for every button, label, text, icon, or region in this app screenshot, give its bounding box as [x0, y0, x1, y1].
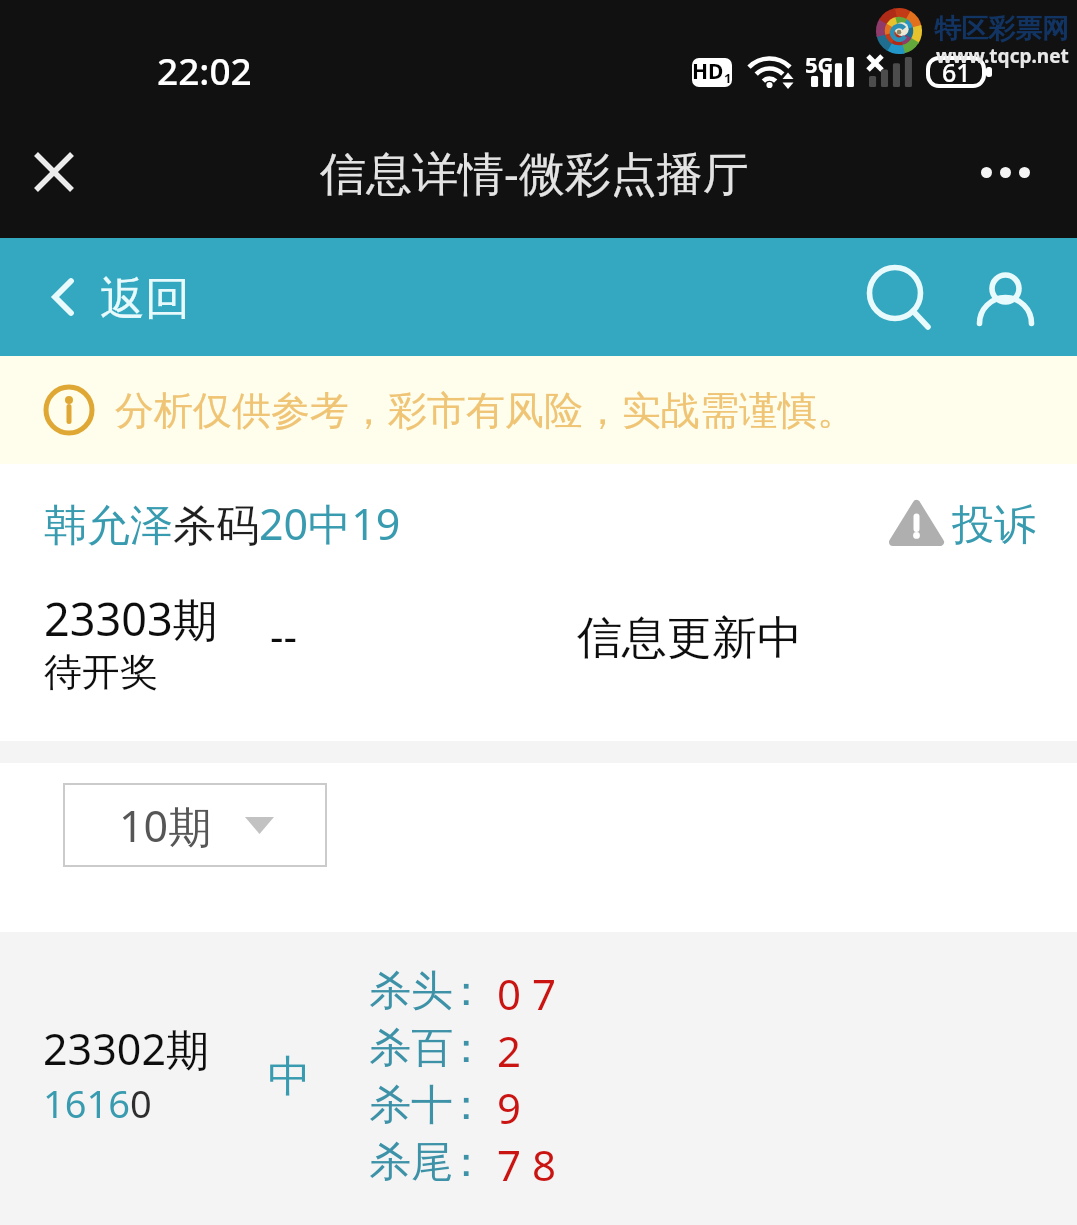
staticText: 分析仅供参考，彩市有风险，实战需谨慎。 — [115, 386, 856, 435]
staticText: ： — [445, 1022, 487, 1075]
staticText: 1 — [724, 69, 732, 87]
staticText: 22:02 — [157, 45, 252, 95]
staticText: 杀尾 — [369, 1136, 453, 1189]
staticText: 23302期 — [43, 1019, 209, 1078]
staticText: HD — [692, 58, 724, 86]
staticText: 61 — [942, 55, 971, 87]
button[interactable]: More options — [962, 129, 1048, 215]
button[interactable]: Profile — [962, 252, 1050, 340]
staticText: 5G — [805, 49, 834, 79]
button[interactable]: 返回 — [30, 246, 206, 347]
staticText: www.tqcp.net — [936, 43, 1069, 69]
staticText: 信息更新中 — [577, 610, 802, 667]
staticText: 待开奖 — [44, 648, 158, 696]
staticText: ： — [445, 1079, 487, 1132]
button[interactable]: 10期 — [63, 783, 327, 867]
button[interactable]: 韩允泽杀码20中19 — [0, 464, 1077, 741]
staticText: 杀百 — [369, 1022, 453, 1075]
staticText: 中 — [268, 1050, 311, 1104]
button[interactable]: 投诉 — [875, 486, 1050, 559]
button[interactable]: Search — [851, 252, 939, 340]
staticText: 韩允泽杀码20中19 — [44, 494, 401, 553]
staticText: ： — [445, 1136, 487, 1189]
staticText: 杀头 — [369, 965, 453, 1018]
staticText: 23303期 — [44, 588, 218, 649]
staticText: 投诉 — [952, 499, 1036, 552]
staticText: 杀十 — [369, 1079, 453, 1132]
button[interactable]: 23302期 — [0, 932, 1077, 1225]
staticText: 0 7 — [497, 965, 556, 1022]
staticText: -- — [270, 607, 298, 664]
staticText: 返回 — [100, 271, 190, 328]
staticText: 信息详情-微彩点播厅 — [320, 141, 749, 204]
staticText: 特区彩票网 — [934, 12, 1069, 46]
staticText: 16160 — [43, 1077, 152, 1129]
staticText: 10期 — [119, 796, 212, 855]
staticText: 9 — [497, 1079, 522, 1136]
staticText: ： — [445, 965, 487, 1018]
staticText: 7 8 — [497, 1136, 556, 1193]
button[interactable]: Close — [11, 129, 97, 215]
staticText: 2 — [497, 1022, 522, 1079]
